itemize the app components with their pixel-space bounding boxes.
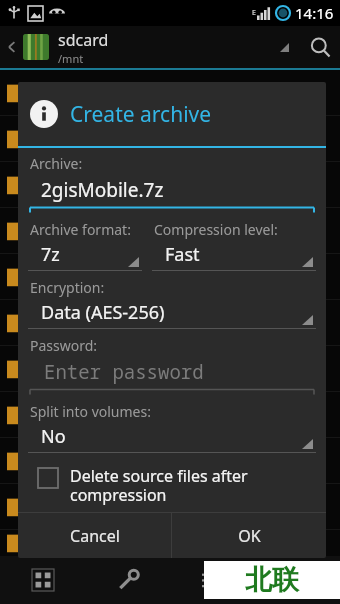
button[interactable] xyxy=(0,484,340,529)
button[interactable]: Fast xyxy=(152,242,316,271)
staticText: No xyxy=(41,424,302,449)
staticText: Archive: xyxy=(30,154,83,173)
staticText: 14:16 xyxy=(295,3,334,23)
staticText: 北联 xyxy=(245,563,299,597)
button[interactable]: Search xyxy=(300,27,340,67)
button[interactable]: Delete source files after compression xyxy=(28,463,316,512)
button[interactable] xyxy=(0,254,340,299)
button[interactable]: Up xyxy=(4,39,20,55)
staticText: Archive format: xyxy=(30,220,131,239)
button[interactable]: Sort xyxy=(170,556,255,604)
staticText: Split into volumes: xyxy=(30,402,151,421)
button[interactable] xyxy=(0,530,340,556)
button[interactable]: Cancel xyxy=(18,513,171,558)
staticText: /mnt xyxy=(58,51,84,66)
button[interactable] xyxy=(0,208,340,253)
button[interactable]: 7z xyxy=(28,242,142,271)
button[interactable]: No xyxy=(28,424,316,453)
staticText: OK xyxy=(238,525,261,547)
button[interactable]: Tools xyxy=(85,556,170,604)
staticText: 2gisMobile.7z xyxy=(41,177,164,203)
button[interactable] xyxy=(0,116,340,161)
button[interactable]: Grid view xyxy=(0,556,85,604)
staticText: Password: xyxy=(30,336,98,355)
button[interactable]: Enter password xyxy=(28,359,316,395)
button[interactable] xyxy=(0,346,340,391)
staticText: Encryption: xyxy=(30,278,105,297)
staticText: E xyxy=(252,8,256,18)
staticText: 7z xyxy=(41,242,128,267)
button[interactable]: Data (AES-256) xyxy=(28,300,316,329)
button[interactable] xyxy=(0,300,340,345)
staticText: Enter password xyxy=(44,359,204,385)
staticText: Fast xyxy=(165,242,302,267)
staticText: Delete source files after compression xyxy=(70,465,316,506)
button[interactable] xyxy=(0,438,340,483)
staticText: sdcard xyxy=(58,29,109,51)
staticText: Compression level: xyxy=(154,220,278,239)
button[interactable]: 2gisMobile.7z xyxy=(28,177,316,213)
button[interactable] xyxy=(0,70,340,115)
button[interactable] xyxy=(0,162,340,207)
staticText: Data (AES-256) xyxy=(41,300,302,325)
button[interactable]: OK xyxy=(172,513,326,558)
button[interactable]: More options xyxy=(270,33,298,61)
button[interactable] xyxy=(0,392,340,437)
staticText: Cancel xyxy=(70,525,120,547)
staticText: Create archive xyxy=(70,100,212,129)
